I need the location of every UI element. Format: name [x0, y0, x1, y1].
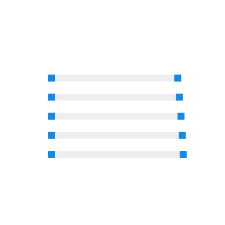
button[interactable]: Upper value, slider 2 [176, 94, 183, 101]
button[interactable]: Upper value, slider 3 [177, 113, 184, 120]
button[interactable]: Lower value, slider 5 [48, 151, 55, 158]
button[interactable]: Upper value, slider 1 [174, 75, 181, 82]
button[interactable]: Lower value, slider 2 [48, 94, 55, 101]
button[interactable]: Upper value, slider 5 [180, 151, 187, 158]
button[interactable]: Lower value, slider 1 [48, 75, 55, 82]
button[interactable]: Lower value, slider 4 [48, 132, 55, 139]
button[interactable]: Lower value, slider 3 [48, 113, 55, 120]
button[interactable]: Upper value, slider 4 [179, 132, 186, 139]
